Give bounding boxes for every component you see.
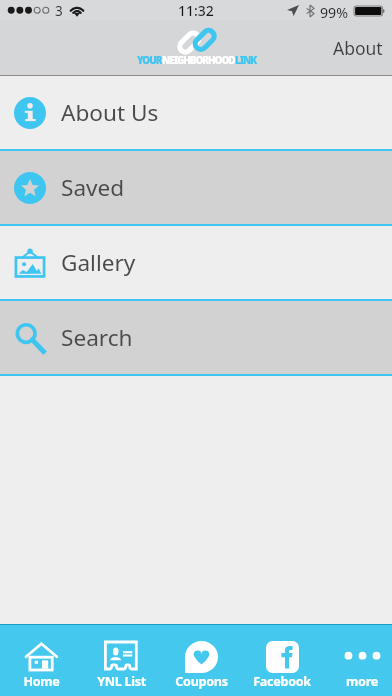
button[interactable]: Saved [0,151,392,224]
staticText: About [333,36,383,60]
staticText: About Us [61,97,159,128]
button[interactable]: Gallery [0,226,392,299]
staticText: more [346,673,378,690]
staticText: 99% [320,3,349,22]
staticText: Saved [61,172,125,203]
staticText: Gallery [61,247,136,278]
staticText: Search [61,322,133,353]
button[interactable]: Facebook [242,625,322,696]
staticText: 3 [55,2,63,20]
button[interactable]: YNL List [81,625,161,696]
staticText: YNL List [97,673,146,690]
staticText: Coupons [175,673,228,690]
button[interactable]: Home [1,625,81,696]
button[interactable]: About [333,36,383,60]
staticText: LINK [235,53,257,67]
button[interactable]: Coupons [161,625,241,696]
staticText: 11:32 [178,1,214,20]
staticText: NEIGHBORHOOD [162,53,235,67]
button[interactable]: more [322,625,392,696]
staticText: YOUR [137,53,162,67]
button[interactable]: Search [0,301,392,374]
staticText: Facebook [253,673,311,690]
staticText: Home [23,673,60,690]
button[interactable]: About Us [0,76,392,149]
